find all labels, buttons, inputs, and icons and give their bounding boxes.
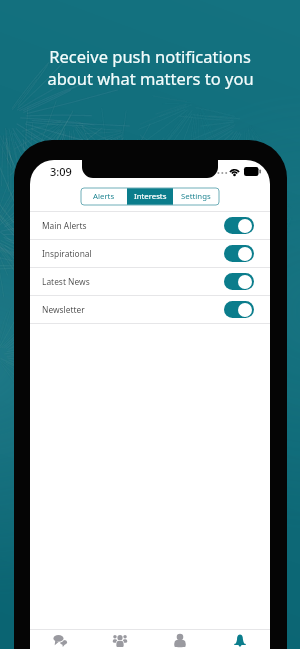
button[interactable]: Chats	[30, 630, 90, 649]
button[interactable]: Groups	[90, 630, 150, 649]
staticText: Inspirational	[42, 248, 92, 259]
staticText: Latest News	[42, 276, 90, 287]
staticText: Settings	[181, 191, 211, 202]
button[interactable]: Newsletter	[30, 296, 270, 323]
button[interactable]: Interests	[127, 188, 173, 205]
button[interactable]: Toggle Latest News	[224, 273, 254, 290]
staticText: Interests	[134, 191, 167, 202]
staticText: Alerts	[93, 191, 115, 202]
staticText: Newsletter	[42, 304, 85, 315]
button[interactable]: Toggle Newsletter	[224, 301, 254, 318]
staticText: Main Alerts	[42, 220, 87, 231]
button[interactable]: Latest News	[30, 268, 270, 295]
button[interactable]: Main Alerts	[30, 212, 270, 239]
staticText: about what matters to you	[47, 67, 254, 89]
button[interactable]: Alerts	[81, 188, 127, 205]
button[interactable]: Profile	[150, 630, 210, 649]
button[interactable]: Settings	[173, 188, 219, 205]
button[interactable]: Inspirational	[30, 240, 270, 267]
button[interactable]: Toggle Inspirational	[224, 245, 254, 262]
button[interactable]: Notifications	[210, 630, 270, 649]
staticText: Receive push notifications	[49, 45, 251, 67]
staticText: 3:09	[50, 164, 72, 179]
button[interactable]: Toggle Main Alerts	[224, 217, 254, 234]
